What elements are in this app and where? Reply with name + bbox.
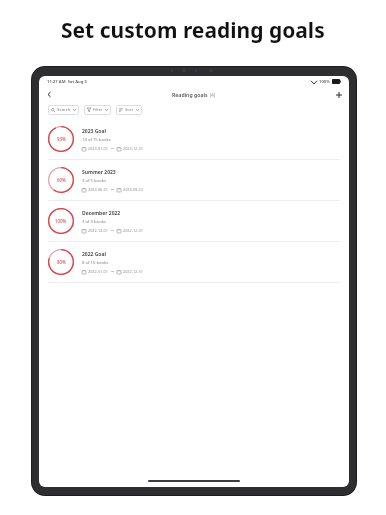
staticText: 2022-01-01 (88, 269, 108, 274)
staticText: 2023-09-23 (123, 187, 143, 192)
staticText: 2023 Goal (82, 128, 106, 135)
staticText: 2022-12-31 (123, 269, 143, 274)
staticText: 11:27 AM Sat Aug 5 (47, 79, 87, 85)
staticText: 80% (57, 259, 66, 265)
staticText: Search (57, 107, 71, 113)
button[interactable]: Filter (84, 105, 111, 115)
staticText: 2022-12-31 (123, 228, 143, 233)
button[interactable]: 100% (39, 201, 349, 242)
staticText: 2023-12-31 (123, 146, 143, 151)
button[interactable]: 80% (39, 242, 349, 283)
staticText: 60% (57, 177, 66, 183)
staticText: Sort (125, 107, 134, 113)
staticText: Set custom reading goals (61, 16, 325, 45)
staticText: December 2022 (82, 210, 121, 217)
button[interactable]: Sort (116, 105, 142, 115)
staticText: 3 of 5 books (82, 178, 106, 184)
staticText: 93% (57, 136, 66, 142)
staticText: (4) (210, 92, 216, 98)
staticText: 2023-01-01 (88, 146, 108, 151)
staticText: 2023-06-21 (88, 187, 108, 192)
staticText: Reading goals (172, 91, 208, 98)
staticText: Filter (93, 107, 103, 113)
staticText: 3 of 3 books (82, 219, 106, 225)
staticText: 100% (319, 79, 330, 85)
button[interactable]: 60% (39, 160, 349, 201)
button[interactable]: Back (44, 89, 55, 100)
staticText: 2022-12-01 (88, 228, 108, 233)
staticText: Summer 2023 (82, 169, 116, 176)
button[interactable]: 93% (39, 119, 349, 160)
staticText: 8 of 10 books (82, 260, 109, 266)
button[interactable]: Add goal (333, 89, 344, 100)
button[interactable]: Search (48, 105, 79, 115)
staticText: 2022 Goal (82, 251, 106, 258)
staticText: 100% (55, 218, 67, 224)
staticText: 14 of 15 books (82, 137, 111, 143)
